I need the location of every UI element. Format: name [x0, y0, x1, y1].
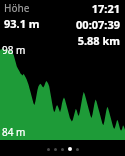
- button[interactable]: Page 3: [61, 148, 64, 151]
- button[interactable]: Page 5: [76, 148, 79, 151]
- staticText: 00:07:39: [76, 17, 120, 32]
- staticText: 93.1 m: [4, 16, 40, 31]
- button[interactable]: Page 1: [47, 148, 50, 151]
- staticText: Höhe: [4, 1, 30, 15]
- button[interactable]: 98 m: [0, 42, 125, 140]
- staticText: 98 m: [2, 43, 26, 57]
- button[interactable]: Page 2: [54, 148, 57, 151]
- staticText: 17:21: [91, 1, 120, 16]
- staticText: 84 m: [2, 125, 26, 139]
- button[interactable]: Page 4: [68, 147, 72, 151]
- staticText: 5.88 km: [77, 33, 120, 48]
